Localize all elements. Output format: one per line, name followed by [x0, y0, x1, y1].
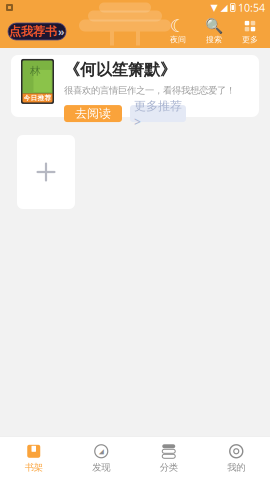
- button[interactable]: 更多: [238, 19, 262, 44]
- button[interactable]: 🔍: [202, 19, 226, 44]
- staticText: 更多推荐 >: [134, 98, 182, 129]
- button[interactable]: 点我荐书: [8, 23, 66, 40]
- staticText: 我的: [227, 462, 245, 473]
- staticText: 搜索: [206, 35, 222, 44]
- staticText: 林: [30, 64, 41, 77]
- staticText: 书架: [25, 462, 43, 473]
- staticText: 🔍: [205, 18, 223, 34]
- staticText: ▼: [210, 2, 217, 13]
- staticText: ◢: [99, 447, 104, 455]
- button[interactable]: 去阅读: [64, 105, 122, 122]
- staticText: 更多: [242, 35, 258, 44]
- staticText: 分类: [160, 462, 178, 473]
- staticText: 去阅读: [75, 106, 111, 121]
- button[interactable]: ◢: [67, 437, 135, 480]
- staticText: 10:54: [238, 0, 265, 15]
- staticText: 发现: [92, 462, 110, 473]
- staticText: 点我荐书: [9, 24, 57, 39]
- staticText: »: [58, 24, 65, 39]
- staticText: ☾: [170, 16, 186, 36]
- button[interactable]: ☾: [166, 19, 190, 44]
- button[interactable]: 添加书籍: [17, 135, 75, 209]
- staticText: ◢: [220, 2, 227, 13]
- button[interactable]: 分类: [135, 437, 202, 480]
- button[interactable]: 更多推荐 >: [130, 105, 186, 122]
- staticText: 今日推荐: [23, 94, 51, 102]
- staticText: 夜间: [170, 35, 186, 44]
- staticText: 《何以笙箫默》: [64, 60, 176, 80]
- button[interactable]: 书架: [0, 437, 67, 480]
- button[interactable]: 我的: [202, 437, 270, 480]
- staticText: 很喜欢的言情巨作之一，看得我想恋爱了！: [64, 85, 235, 96]
